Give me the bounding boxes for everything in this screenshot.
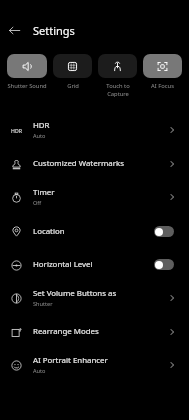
- button[interactable]: Touch to Capture: [98, 54, 137, 98]
- button[interactable]: Back: [0, 17, 29, 44]
- staticText: Off: [33, 199, 42, 207]
- button[interactable]: Timer: [0, 180, 189, 214]
- button[interactable]: Horizontal Level: [154, 259, 174, 270]
- button[interactable]: AI Focus: [143, 54, 182, 90]
- button[interactable]: Shutter Sound: [7, 54, 47, 90]
- button[interactable]: Customized Watermarks: [0, 147, 189, 180]
- staticText: Auto: [33, 132, 46, 140]
- staticText: Touch to Capture: [106, 82, 130, 98]
- staticText: Location: [33, 226, 65, 237]
- button[interactable]: Location: [154, 226, 174, 237]
- staticText: Customized Watermarks: [33, 158, 124, 169]
- button[interactable]: Rearrange Modes: [0, 315, 189, 348]
- staticText: AI Portrait Enhancer: [33, 355, 108, 366]
- staticText: AI Focus: [151, 82, 174, 90]
- button[interactable]: Set Volume Buttons as: [0, 281, 189, 315]
- button[interactable]: AI Portrait Enhancer: [0, 348, 189, 382]
- staticText: Grid: [67, 82, 79, 90]
- staticText: Timer: [33, 187, 55, 198]
- staticText: Shutter Sound: [7, 82, 47, 90]
- staticText: Rearrange Modes: [33, 326, 99, 337]
- staticText: Horizontal Level: [33, 259, 93, 270]
- staticText: HDR: [33, 120, 50, 131]
- button[interactable]: Grid: [53, 54, 92, 90]
- staticText: Shutter: [33, 300, 53, 308]
- staticText: Auto: [33, 367, 46, 375]
- button[interactable]: Location: [0, 214, 189, 248]
- button[interactable]: Horizontal Level: [0, 248, 189, 281]
- staticText: Settings: [33, 23, 75, 38]
- staticText: Set Volume Buttons as: [33, 288, 117, 299]
- staticText: HDR: [11, 127, 22, 134]
- button[interactable]: HDR: [0, 113, 189, 147]
